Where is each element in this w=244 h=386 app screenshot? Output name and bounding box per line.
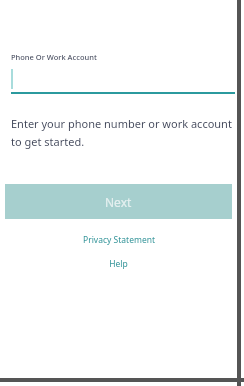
staticText: Privacy Statement xyxy=(83,234,155,246)
staticText: Enter your phone number or work account … xyxy=(11,116,235,149)
staticText: Phone Or Work Account xyxy=(11,52,97,62)
button[interactable]: Next xyxy=(5,184,232,219)
button[interactable]: Help xyxy=(103,256,134,272)
button[interactable]: Privacy Statement xyxy=(77,232,161,248)
staticText: Next xyxy=(105,194,132,210)
button[interactable]: Phone Or Work Account input xyxy=(11,68,235,94)
staticText: Help xyxy=(109,258,128,270)
